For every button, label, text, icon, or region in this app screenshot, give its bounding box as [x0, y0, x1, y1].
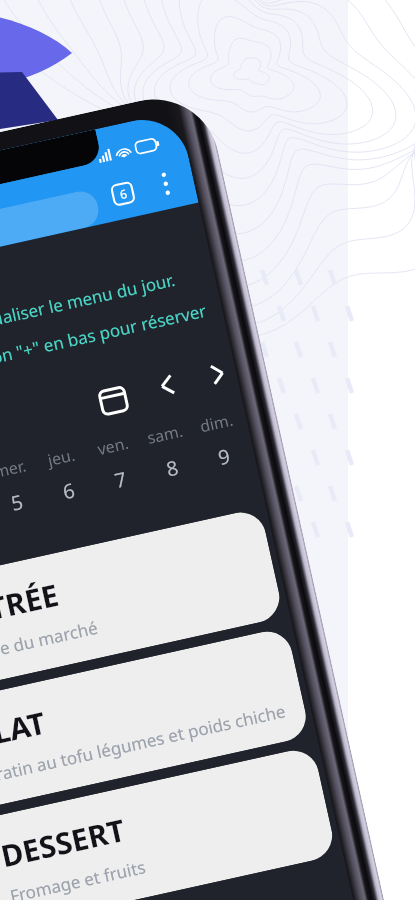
staticText: 7 — [112, 465, 129, 494]
staticText: 5 — [8, 488, 26, 517]
staticText: Utilisez le bouton "+" en bas pour réser… — [0, 299, 209, 394]
button[interactable]: ENTRÉE — [0, 507, 284, 693]
button[interactable]: cantine-scolaire.web.app — [0, 188, 102, 282]
staticText: 6 — [60, 476, 78, 505]
staticText: 8 — [164, 454, 181, 483]
button[interactable]: mer. — [0, 452, 45, 521]
button[interactable]: sam. — [137, 418, 201, 487]
button[interactable]: jeu. — [34, 441, 97, 510]
button[interactable]: Semaine suivante — [196, 352, 238, 395]
staticText: ENTRÉE — [0, 574, 62, 638]
button[interactable]: ven. — [85, 429, 149, 498]
staticText: Fromage et fruits — [8, 855, 147, 900]
button[interactable]: DESSERT — [0, 746, 337, 900]
button[interactable] — [160, 172, 171, 196]
button[interactable]: Semaine précédente — [145, 363, 188, 406]
staticText: ven. — [95, 432, 131, 460]
button[interactable]: 6 — [111, 182, 135, 206]
staticText: jeu. — [45, 443, 78, 471]
staticText: mer. — [0, 454, 29, 483]
staticText: sam. — [145, 420, 185, 449]
staticText: PLAT — [0, 702, 50, 757]
staticText: Gratin au tofu légumes et poids chiche — [0, 699, 288, 788]
staticText: Salade du marché — [0, 616, 101, 669]
staticText: 9 — [215, 442, 233, 471]
staticText: 6 — [118, 185, 129, 202]
staticText: Cliquez pour visualiser le menu du jour. — [0, 268, 177, 358]
staticText: DESSERT — [0, 809, 129, 876]
staticText: dim. — [198, 408, 236, 437]
button[interactable]: PLAT — [0, 627, 311, 812]
button[interactable]: Calendrier — [92, 378, 135, 421]
button[interactable]: dim. — [189, 406, 252, 475]
